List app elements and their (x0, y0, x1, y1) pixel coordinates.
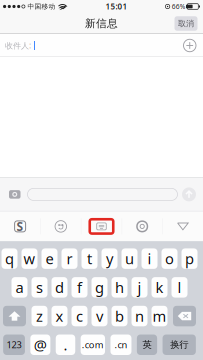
staticText: S (17, 218, 24, 234)
button[interactable]: x (51, 306, 67, 326)
staticText: t (87, 249, 92, 268)
staticText: 123 (7, 339, 22, 351)
staticText: l (177, 278, 181, 297)
button[interactable]: d (51, 277, 67, 298)
button[interactable]: t (81, 248, 97, 269)
button[interactable]: Keyboard layout (81, 211, 122, 241)
button[interactable]: n (131, 306, 147, 326)
staticText: @ (34, 335, 47, 354)
staticText: z (36, 306, 43, 326)
staticText: f (77, 278, 82, 297)
button[interactable]: r (61, 248, 77, 269)
staticText: u (125, 249, 134, 268)
staticText: k (155, 278, 163, 297)
button[interactable]: c (71, 306, 87, 326)
staticText: r (66, 249, 72, 268)
staticText: 中国移动 (27, 2, 55, 11)
staticText: p (185, 249, 194, 268)
button[interactable]: Delete (173, 306, 196, 326)
staticText: 英 (142, 339, 151, 350)
button[interactable]: b (111, 306, 127, 326)
button[interactable]: a (11, 277, 27, 298)
staticText: m (152, 306, 166, 326)
staticText: a (15, 278, 23, 297)
staticText: .com (82, 339, 104, 351)
button[interactable]: Hide keyboard (163, 211, 203, 241)
staticText: d (55, 278, 64, 297)
button[interactable]: w (21, 248, 37, 269)
button[interactable]: q (1, 248, 17, 269)
staticText: j (137, 278, 141, 297)
button[interactable]: Sogou input (0, 211, 40, 241)
staticText: v (96, 306, 103, 326)
button[interactable]: Shift (3, 306, 26, 326)
staticText: e (45, 249, 53, 268)
button[interactable]: p (181, 248, 197, 269)
button[interactable]: z (31, 306, 47, 326)
staticText: 收件人: (5, 40, 31, 51)
staticText: .cn (114, 339, 127, 351)
staticText: b (115, 306, 124, 326)
button[interactable]: k (151, 277, 167, 298)
staticText: 取消 (178, 19, 194, 28)
staticText: s (36, 278, 43, 297)
button[interactable]: s (31, 277, 47, 298)
staticText: c (76, 306, 83, 326)
staticText: q (5, 249, 14, 268)
button[interactable]: j (131, 277, 147, 298)
button[interactable]: m (151, 306, 167, 326)
button[interactable]: Send (182, 187, 196, 201)
staticText: 15:01 (105, 1, 127, 12)
button[interactable]: .com (81, 334, 105, 355)
button[interactable]: Settings (122, 211, 162, 241)
button[interactable]: h (111, 277, 127, 298)
staticText: h (115, 278, 124, 297)
staticText: i (147, 249, 151, 268)
staticText: n (135, 306, 144, 326)
staticText: w (23, 249, 35, 268)
button[interactable]: g (91, 277, 107, 298)
button[interactable]: o (161, 248, 177, 269)
button[interactable]: . (56, 334, 75, 355)
staticText: g (95, 278, 104, 297)
button[interactable]: @ (30, 334, 50, 355)
staticText: o (165, 249, 174, 268)
button[interactable]: i (141, 248, 157, 269)
button[interactable]: e (41, 248, 57, 269)
staticText: x (55, 306, 63, 326)
button[interactable]: .cn (110, 334, 131, 355)
button[interactable]: f (71, 277, 87, 298)
button[interactable]: v (91, 306, 107, 326)
button[interactable]: u (121, 248, 137, 269)
button[interactable]: l (171, 277, 187, 298)
button[interactable]: 123 (3, 334, 25, 355)
button[interactable]: 换行 (162, 334, 196, 355)
staticText: 新信息 (85, 17, 118, 30)
button[interactable]: Add recipient (183, 39, 196, 52)
button[interactable]: Emoji (41, 211, 81, 241)
button[interactable]: Camera (9, 189, 20, 200)
button[interactable]: y (101, 248, 117, 269)
staticText: 66% (172, 2, 186, 11)
staticText: 换行 (170, 339, 188, 350)
staticText: y (106, 249, 113, 268)
button[interactable]: 英 (137, 334, 157, 355)
staticText: . (63, 335, 67, 354)
button[interactable]: 取消 (174, 16, 197, 31)
